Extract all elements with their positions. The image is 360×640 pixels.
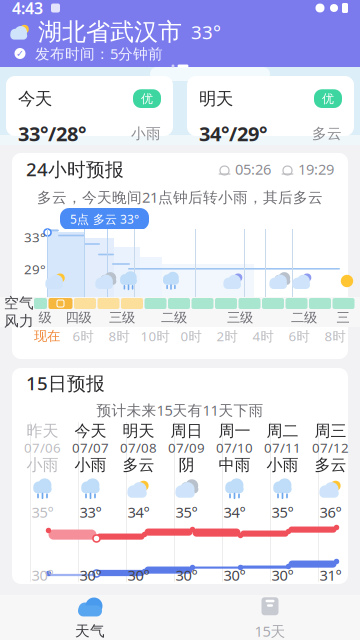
staticText: 阴 bbox=[178, 455, 194, 475]
staticText: 多云 bbox=[312, 125, 342, 143]
staticText: 风力 bbox=[4, 312, 34, 330]
staticText: 二级 bbox=[161, 309, 187, 326]
staticText: 35° bbox=[31, 502, 53, 522]
staticText: 现在 bbox=[34, 328, 60, 344]
staticText: 33° bbox=[24, 228, 46, 246]
staticText: 天气 bbox=[75, 622, 105, 640]
staticText: 三级 bbox=[227, 309, 253, 326]
staticText: 19:29 bbox=[298, 159, 334, 179]
staticText: 34° bbox=[127, 502, 149, 522]
staticText: 10时 bbox=[140, 327, 169, 345]
staticText: 31° bbox=[319, 565, 341, 585]
staticText: 33° bbox=[191, 20, 221, 44]
staticText: 优 bbox=[141, 91, 153, 106]
staticText: 33°/28° bbox=[18, 120, 86, 147]
staticText: 6时 bbox=[288, 327, 309, 345]
staticText: 三级 bbox=[109, 309, 135, 326]
staticText: 30° bbox=[175, 565, 197, 585]
staticText: 30° bbox=[79, 565, 101, 585]
staticText: 07/07 bbox=[72, 439, 109, 456]
staticText: 多云 bbox=[314, 455, 346, 475]
staticText: 周二 bbox=[266, 421, 298, 441]
staticText: 36° bbox=[319, 502, 341, 522]
staticText: 优 bbox=[322, 91, 334, 106]
staticText: 24小时预报 bbox=[26, 157, 124, 181]
staticText: 30° bbox=[31, 565, 53, 585]
staticText: 30° bbox=[271, 565, 293, 585]
staticText: 07/08 bbox=[120, 439, 157, 456]
staticText: 07/12 bbox=[312, 439, 349, 456]
staticText: 8时 bbox=[324, 327, 345, 345]
staticText: 35° bbox=[271, 502, 293, 522]
staticText: 5点 多云 33° bbox=[70, 211, 139, 227]
staticText: 05:26 bbox=[235, 159, 271, 179]
staticText: 多云 bbox=[122, 455, 154, 475]
staticText: 四级 bbox=[65, 309, 91, 326]
staticText: 33° bbox=[79, 502, 101, 522]
staticText: 小雨 bbox=[131, 125, 161, 143]
button[interactable]: 明天 bbox=[187, 76, 354, 136]
staticText: 二级 bbox=[291, 309, 317, 326]
staticText: 小雨 bbox=[26, 455, 58, 475]
staticText: 周日 bbox=[170, 421, 202, 441]
staticText: 小雨 bbox=[266, 455, 298, 475]
button[interactable]: 15天 bbox=[180, 595, 360, 640]
staticText: 发布时间：5分钟前 bbox=[35, 44, 163, 63]
staticText: 级 bbox=[38, 309, 51, 326]
staticText: 15天 bbox=[254, 621, 285, 640]
staticText: 07/10 bbox=[216, 439, 253, 456]
button[interactable]: 今天 bbox=[6, 76, 173, 136]
staticText: 8时 bbox=[108, 327, 129, 345]
staticText: 0时 bbox=[180, 327, 201, 345]
staticText: 预计未来15天有11天下雨 bbox=[96, 400, 263, 420]
button[interactable]: 天气 bbox=[0, 595, 180, 640]
staticText: 三 bbox=[336, 309, 349, 326]
staticText: 周一 bbox=[218, 421, 250, 441]
staticText: 29° bbox=[24, 260, 46, 278]
staticText: 多云，今天晚间21点钟后转小雨，其后多云 bbox=[37, 187, 323, 207]
staticText: 中雨 bbox=[218, 455, 250, 475]
staticText: 07/11 bbox=[264, 439, 301, 456]
staticText: 2时 bbox=[216, 327, 237, 345]
staticText: 周三 bbox=[314, 421, 346, 441]
staticText: 30° bbox=[127, 565, 149, 585]
staticText: 34°/29° bbox=[199, 120, 267, 147]
staticText: 明天 bbox=[199, 88, 233, 109]
staticText: 今天 bbox=[74, 421, 106, 441]
staticText: 今天 bbox=[18, 88, 52, 109]
staticText: 07/06 bbox=[24, 439, 61, 456]
staticText: 34° bbox=[223, 502, 245, 522]
staticText: 4时 bbox=[252, 327, 273, 345]
staticText: ✓ bbox=[16, 48, 24, 59]
staticText: 07/09 bbox=[168, 439, 205, 456]
staticText: 湖北省武汉市 bbox=[38, 17, 182, 47]
staticText: 35° bbox=[175, 502, 197, 522]
staticText: 明天 bbox=[122, 421, 154, 441]
staticText: 昨天 bbox=[26, 421, 58, 441]
staticText: 4:43 bbox=[12, 0, 43, 19]
staticText: 小雨 bbox=[74, 455, 106, 475]
staticText: 空气 bbox=[4, 294, 34, 312]
staticText: 30° bbox=[223, 565, 245, 585]
staticText: 6时 bbox=[72, 327, 93, 345]
staticText: 15日预报 bbox=[26, 371, 105, 395]
